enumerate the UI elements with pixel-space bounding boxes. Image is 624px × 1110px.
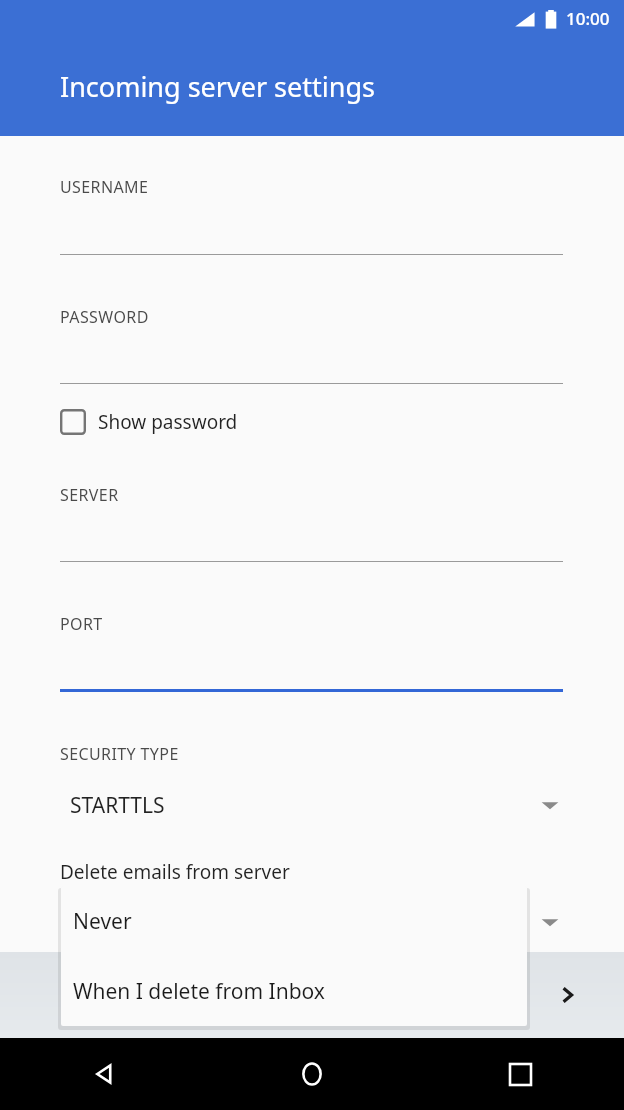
staticText: PASSWORD <box>60 306 149 328</box>
button[interactable]: Home <box>286 1048 338 1100</box>
button[interactable]: Back <box>78 1048 130 1100</box>
staticText: USERNAME <box>60 176 149 198</box>
button[interactable]: Recent apps <box>494 1048 546 1100</box>
button[interactable]: STARTTLS <box>60 778 563 832</box>
button[interactable]: Next <box>0 952 624 1038</box>
button[interactable]: Show password <box>60 402 290 442</box>
staticText: Delete emails from server <box>60 859 290 885</box>
other: Next <box>556 985 576 1005</box>
staticText: 10:00 <box>566 7 610 30</box>
staticText: Never <box>73 907 132 936</box>
staticText: Show password <box>98 409 238 435</box>
staticText: Incoming server settings <box>60 68 375 105</box>
button[interactable]: Never <box>61 886 527 956</box>
staticText: SECURITY TYPE <box>60 743 179 765</box>
staticText: When I delete from Inbox <box>73 977 325 1006</box>
button[interactable] <box>60 895 563 949</box>
button[interactable]: When I delete from Inbox <box>61 956 527 1026</box>
staticText: PORT <box>60 613 103 635</box>
staticText: STARTTLS <box>70 791 165 820</box>
staticText: SERVER <box>60 484 119 506</box>
